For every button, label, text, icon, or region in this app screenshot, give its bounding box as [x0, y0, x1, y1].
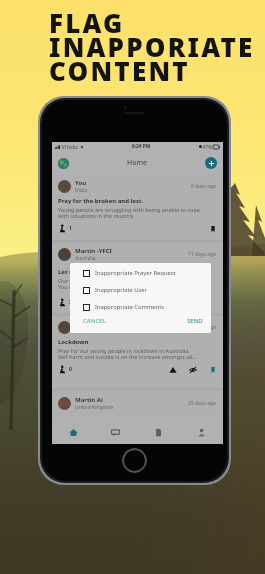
staticText: Lockdown [58, 338, 89, 346]
button[interactable]: Feed [137, 420, 180, 444]
button[interactable]: Home [52, 420, 94, 444]
staticText: CANCEL [83, 317, 106, 325]
staticText: 1 [69, 225, 72, 232]
staticText: 25 days ago [188, 400, 217, 407]
staticText: 47% [203, 144, 212, 150]
button[interactable]: Profile [180, 420, 223, 444]
staticText: 10 days ago [188, 324, 217, 331]
button[interactable]: Martin -YFCI [52, 243, 223, 313]
staticText: Let us pray [58, 268, 91, 276]
button[interactable]: Report [169, 366, 177, 374]
staticText: Inappropriate Prayer Request [95, 269, 176, 277]
button[interactable]: Hide [189, 366, 197, 374]
staticText: Home [127, 158, 147, 168]
button[interactable]: Inappropriate User [83, 286, 203, 294]
staticText: You [75, 179, 87, 187]
button[interactable]: CANCEL [83, 317, 106, 325]
staticText: Inappropriate User [95, 286, 147, 294]
staticText: Australia [75, 255, 96, 262]
button[interactable]: Profile [58, 158, 69, 169]
button[interactable]: Martin -YFCI [52, 316, 223, 388]
staticText: 11 days ago [188, 251, 217, 258]
staticText: 6:24 PM [132, 143, 151, 150]
staticText: SEND [187, 317, 203, 325]
staticText: FLAG INAPPORIATE CONTENT [49, 5, 255, 88]
staticText: United Kingdom [75, 404, 114, 411]
button[interactable]: Inappropriate Comments [83, 303, 203, 311]
button[interactable]: You [52, 175, 223, 240]
staticText: Martin Ai [75, 396, 103, 404]
staticText: Our young people are facing many challen… [58, 277, 195, 291]
button[interactable]: Bookmark [209, 366, 217, 374]
staticText: 2 [69, 299, 72, 306]
staticText: Australia [75, 328, 96, 335]
staticText: Martin -YFCI [75, 320, 112, 328]
button[interactable]: Inappropriate Prayer Request [83, 269, 203, 277]
button[interactable]: Add prayer [205, 157, 217, 169]
staticText: Young people are struggling with being u… [58, 206, 200, 220]
staticText: Vi India [62, 144, 78, 150]
button[interactable]: Chat [94, 420, 137, 444]
staticText: Pray for the broken and lost. [58, 197, 144, 205]
button[interactable]: SEND [187, 317, 203, 325]
staticText: Pray for our young people in lockdown in… [58, 347, 198, 361]
staticText: India [75, 187, 87, 194]
staticText: 0 [69, 366, 72, 373]
staticText: Martin -YFCI [75, 247, 112, 255]
staticText: Inappropriate Comments [95, 303, 165, 311]
staticText: 6 days ago [191, 183, 217, 190]
button[interactable]: Bookmark [209, 225, 217, 233]
button[interactable]: Martin Ai [52, 391, 223, 419]
